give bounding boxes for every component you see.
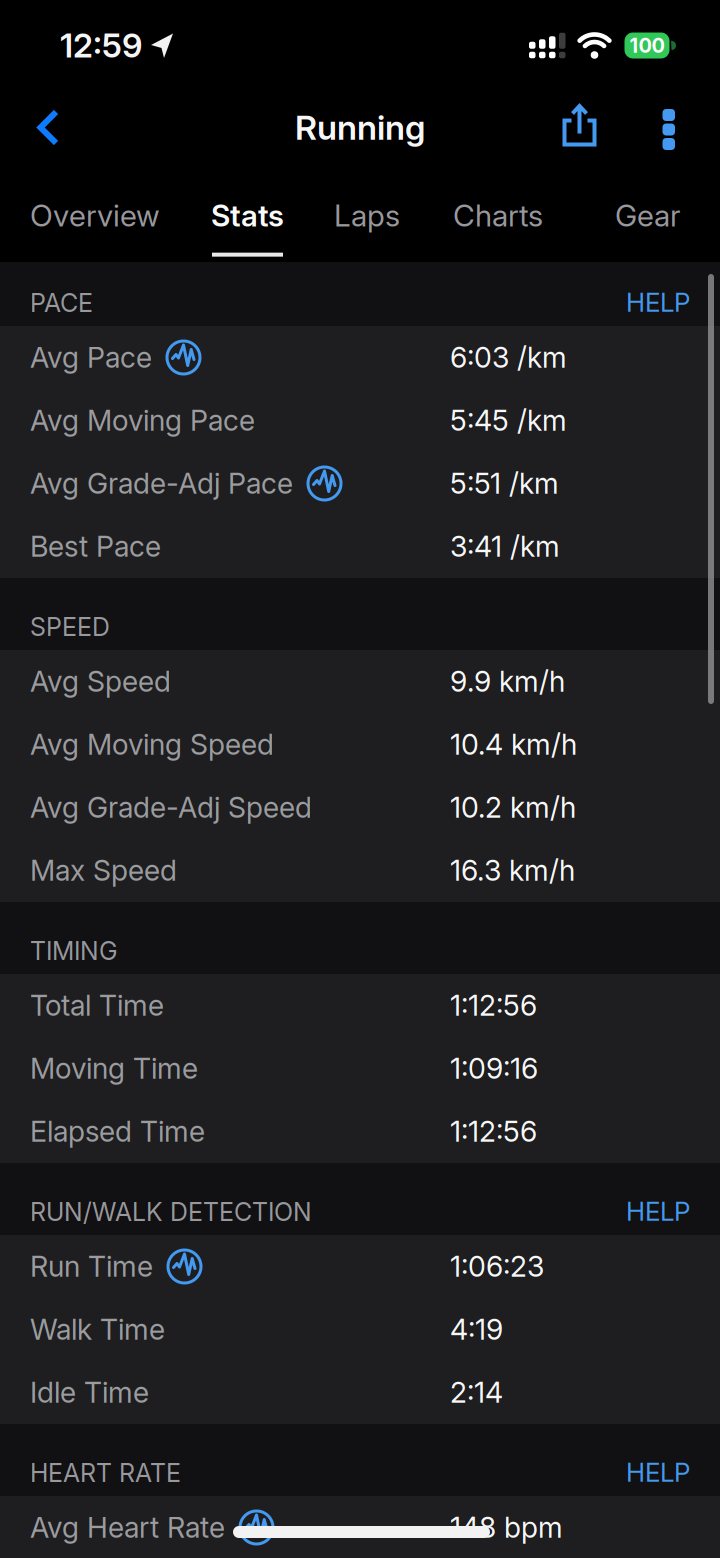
button[interactable]: Gear xyxy=(615,197,681,257)
staticText: Moving Time xyxy=(30,1051,198,1086)
staticText: Avg Speed xyxy=(30,664,171,699)
staticText: HELP xyxy=(626,1456,690,1488)
button[interactable]: Share xyxy=(560,103,598,151)
staticText: 5:45 /km xyxy=(450,403,567,438)
staticText: Avg Heart Rate xyxy=(30,1510,225,1545)
staticText: 100 xyxy=(629,33,664,58)
staticText: 2:14 xyxy=(450,1375,503,1410)
staticText: PACE xyxy=(30,288,93,318)
staticText: 1:09:16 xyxy=(450,1051,538,1086)
staticText: 1:12:56 xyxy=(450,988,537,1023)
staticText: Idle Time xyxy=(30,1375,149,1410)
staticText: HEART RATE xyxy=(30,1458,181,1488)
button[interactable]: Overview xyxy=(30,197,160,257)
button[interactable]: HELP xyxy=(626,1195,690,1227)
staticText: 4:19 xyxy=(450,1312,503,1347)
button[interactable]: About Run Time xyxy=(166,1248,203,1285)
staticText: Laps xyxy=(334,197,400,234)
staticText: TIMING xyxy=(30,936,118,966)
staticText: Avg Grade-Adj Speed xyxy=(30,790,312,825)
staticText: HELP xyxy=(626,286,690,318)
staticText: 16.3 km/h xyxy=(450,853,575,888)
staticText: Max Speed xyxy=(30,853,177,888)
staticText: Overview xyxy=(30,197,160,234)
button[interactable]: HELP xyxy=(626,286,690,318)
button[interactable]: HELP xyxy=(626,1456,690,1488)
staticText: 12:59 xyxy=(60,25,142,65)
staticText: 1:12:56 xyxy=(450,1114,537,1149)
staticText: 148 bpm xyxy=(450,1510,563,1545)
button[interactable]: Stats xyxy=(211,197,284,257)
staticText: Charts xyxy=(453,197,543,234)
button[interactable]: Charts xyxy=(453,197,543,257)
staticText: Avg Moving Pace xyxy=(30,403,255,438)
staticText: Best Pace xyxy=(30,529,161,564)
staticText: 1:06:23 xyxy=(450,1249,544,1284)
staticText: Avg Moving Speed xyxy=(30,727,274,762)
staticText: 10.4 km/h xyxy=(450,727,577,762)
staticText: Running xyxy=(295,107,425,148)
staticText: Avg Pace xyxy=(30,340,152,375)
button[interactable]: About Avg Pace xyxy=(165,339,202,376)
staticText: 5:51 /km xyxy=(450,466,559,501)
staticText: HELP xyxy=(626,1195,690,1227)
button[interactable]: Back xyxy=(0,109,59,146)
staticText: Gear xyxy=(615,197,681,234)
staticText: 3:41 /km xyxy=(450,529,560,564)
staticText: Stats xyxy=(211,197,284,234)
staticText: Avg Grade-Adj Pace xyxy=(30,466,293,501)
staticText: Run Time xyxy=(30,1249,153,1284)
button[interactable]: Laps xyxy=(334,197,400,257)
staticText: Total Time xyxy=(30,988,164,1023)
staticText: Walk Time xyxy=(30,1312,165,1347)
staticText: Elapsed Time xyxy=(30,1114,205,1149)
staticText: 6:03 /km xyxy=(450,340,567,375)
staticText: SPEED xyxy=(30,612,110,642)
button[interactable]: More options xyxy=(598,107,720,148)
staticText: RUN/WALK DETECTION xyxy=(30,1197,312,1227)
staticText: 9.9 km/h xyxy=(450,664,565,699)
button[interactable]: About Avg Heart Rate xyxy=(238,1509,275,1546)
staticText: 10.2 km/h xyxy=(450,790,576,825)
button[interactable]: About Avg Grade-Adj Pace xyxy=(306,465,343,502)
